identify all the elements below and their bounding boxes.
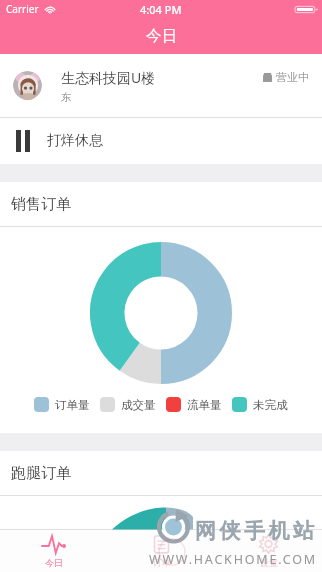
- staticText: 订单量: [55, 398, 90, 412]
- button[interactable]: 设置: [215, 530, 322, 572]
- staticText: 跑腿订单: [11, 464, 71, 483]
- button[interactable]: 生态科技园U楼: [0, 54, 322, 117]
- staticText: 营业中: [276, 70, 309, 84]
- button[interactable]: 打烊休息: [0, 118, 322, 164]
- staticText: 4:04 PM: [140, 2, 182, 17]
- button[interactable]: 跑腿订单: [0, 451, 322, 495]
- staticText: WWW.HACKHOME.COM: [149, 551, 317, 568]
- other: Battery: [295, 4, 318, 15]
- button[interactable]: 销售订单: [0, 182, 322, 226]
- staticText: Carrier: [6, 2, 39, 16]
- staticText: 今日: [45, 557, 63, 568]
- staticText: 成交量: [121, 398, 156, 412]
- staticText: 打烊休息: [47, 132, 103, 150]
- button[interactable]: 订单: [108, 530, 215, 572]
- button[interactable]: 今日: [0, 530, 108, 572]
- staticText: 生态科技园U楼: [61, 68, 156, 87]
- staticText: 今日: [146, 26, 177, 46]
- staticText: 订单: [153, 557, 171, 568]
- staticText: 东: [61, 91, 72, 104]
- staticText: 设置: [260, 557, 278, 568]
- staticText: 未完成: [253, 398, 288, 412]
- staticText: 销售订单: [11, 195, 71, 214]
- staticText: 流单量: [187, 398, 222, 412]
- other: Wifi: [44, 4, 56, 14]
- staticText: 网侠手机站: [193, 518, 316, 544]
